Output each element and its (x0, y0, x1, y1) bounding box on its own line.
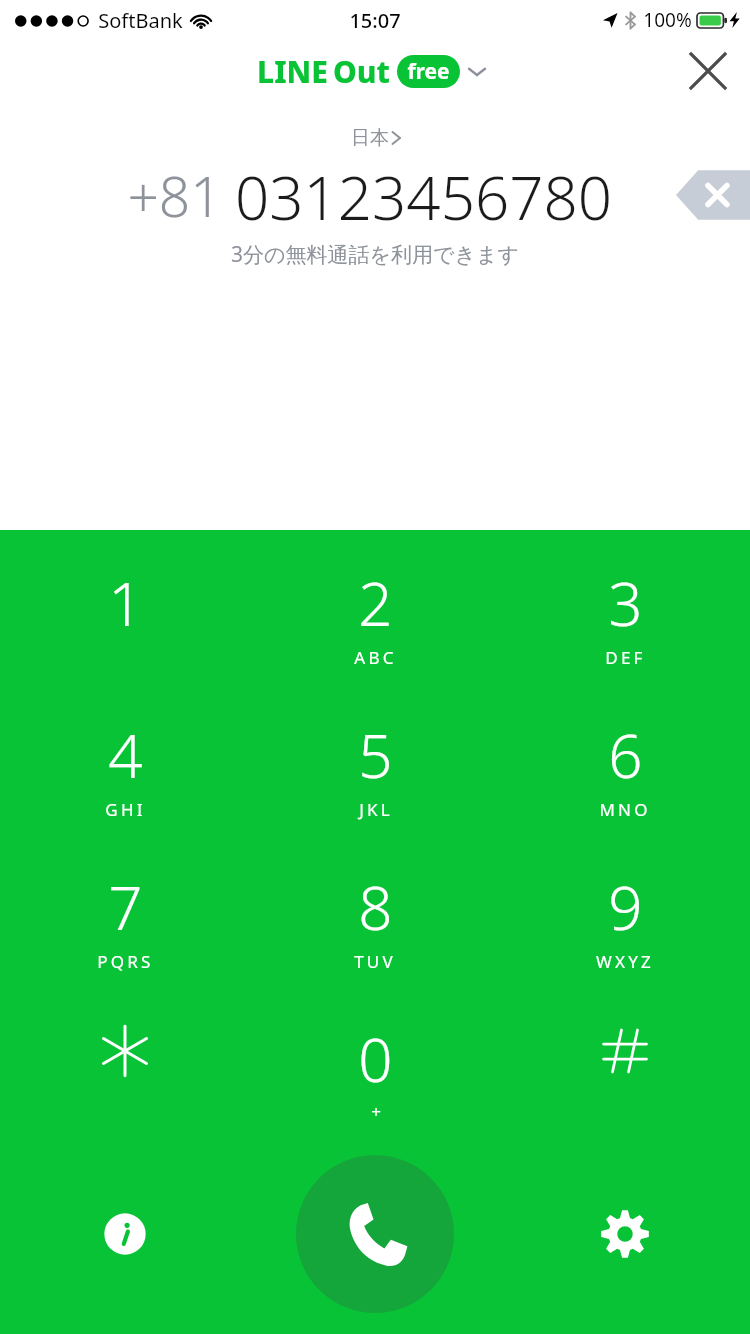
staticText: DEF (605, 646, 646, 669)
staticText: JKL (359, 798, 393, 821)
button[interactable]: Star (0, 1018, 250, 1126)
staticText: 7 (108, 866, 143, 948)
button[interactable]: Settings (500, 1134, 750, 1334)
button[interactable]: 5 (250, 714, 500, 822)
button[interactable]: 4 (0, 714, 250, 822)
staticText: 6 (608, 714, 643, 796)
staticText: + (371, 1100, 381, 1123)
button[interactable]: 1 (0, 562, 250, 670)
staticText: 8 (358, 866, 393, 948)
staticText: 03123456780 (235, 156, 612, 234)
button[interactable]: 3 (500, 562, 750, 670)
staticText: ABC (354, 646, 397, 669)
staticText: 5 (358, 714, 393, 796)
button[interactable]: Call (250, 1134, 500, 1334)
staticText: 9 (608, 866, 643, 948)
staticText: free (407, 57, 450, 86)
staticText: 15:07 (349, 7, 401, 34)
button[interactable]: 7 (0, 866, 250, 974)
button[interactable]: Information (0, 1134, 250, 1334)
staticText: Out (333, 51, 390, 92)
button[interactable]: 9 (500, 866, 750, 974)
button[interactable]: 日本 (343, 124, 408, 152)
button[interactable]: 8 (250, 866, 500, 974)
staticText: TUV (354, 950, 396, 973)
staticText: PQRS (97, 950, 154, 973)
staticText: 100% (643, 7, 692, 33)
staticText: 2 (358, 562, 393, 644)
staticText: GHI (105, 798, 146, 821)
staticText: 1 (108, 562, 143, 644)
staticText: WXYZ (596, 950, 654, 973)
staticText: MNO (599, 798, 651, 821)
button[interactable]: Close (680, 43, 736, 99)
staticText: 3分の無料通話を利用できます (231, 240, 519, 269)
staticText: 日本 (351, 126, 389, 150)
button[interactable]: 2 (250, 562, 500, 670)
button[interactable]: 0 (250, 1018, 500, 1126)
staticText: LINE (257, 51, 328, 92)
staticText: 0 (358, 1018, 393, 1100)
staticText: 3 (608, 562, 643, 644)
staticText: +81 (127, 158, 222, 233)
button[interactable]: Pound (500, 1018, 750, 1126)
staticText: 4 (108, 714, 143, 796)
staticText: SoftBank (98, 7, 183, 34)
button[interactable]: 6 (500, 714, 750, 822)
button[interactable]: Delete (676, 167, 750, 223)
